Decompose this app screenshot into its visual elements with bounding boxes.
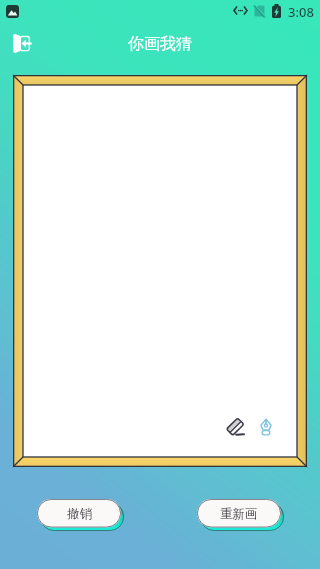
button[interactable]: Eraser <box>227 419 244 436</box>
staticText: 你画我猜 <box>0 34 320 54</box>
button[interactable]: 重新画 <box>197 499 281 528</box>
button[interactable]: Pen <box>260 418 272 436</box>
staticText: 撤销 <box>67 506 92 522</box>
button[interactable]: 撤销 <box>37 499 121 528</box>
staticText: 3:08 <box>288 3 314 21</box>
staticText: 重新画 <box>220 506 258 522</box>
button[interactable]: Exit <box>9 30 36 57</box>
